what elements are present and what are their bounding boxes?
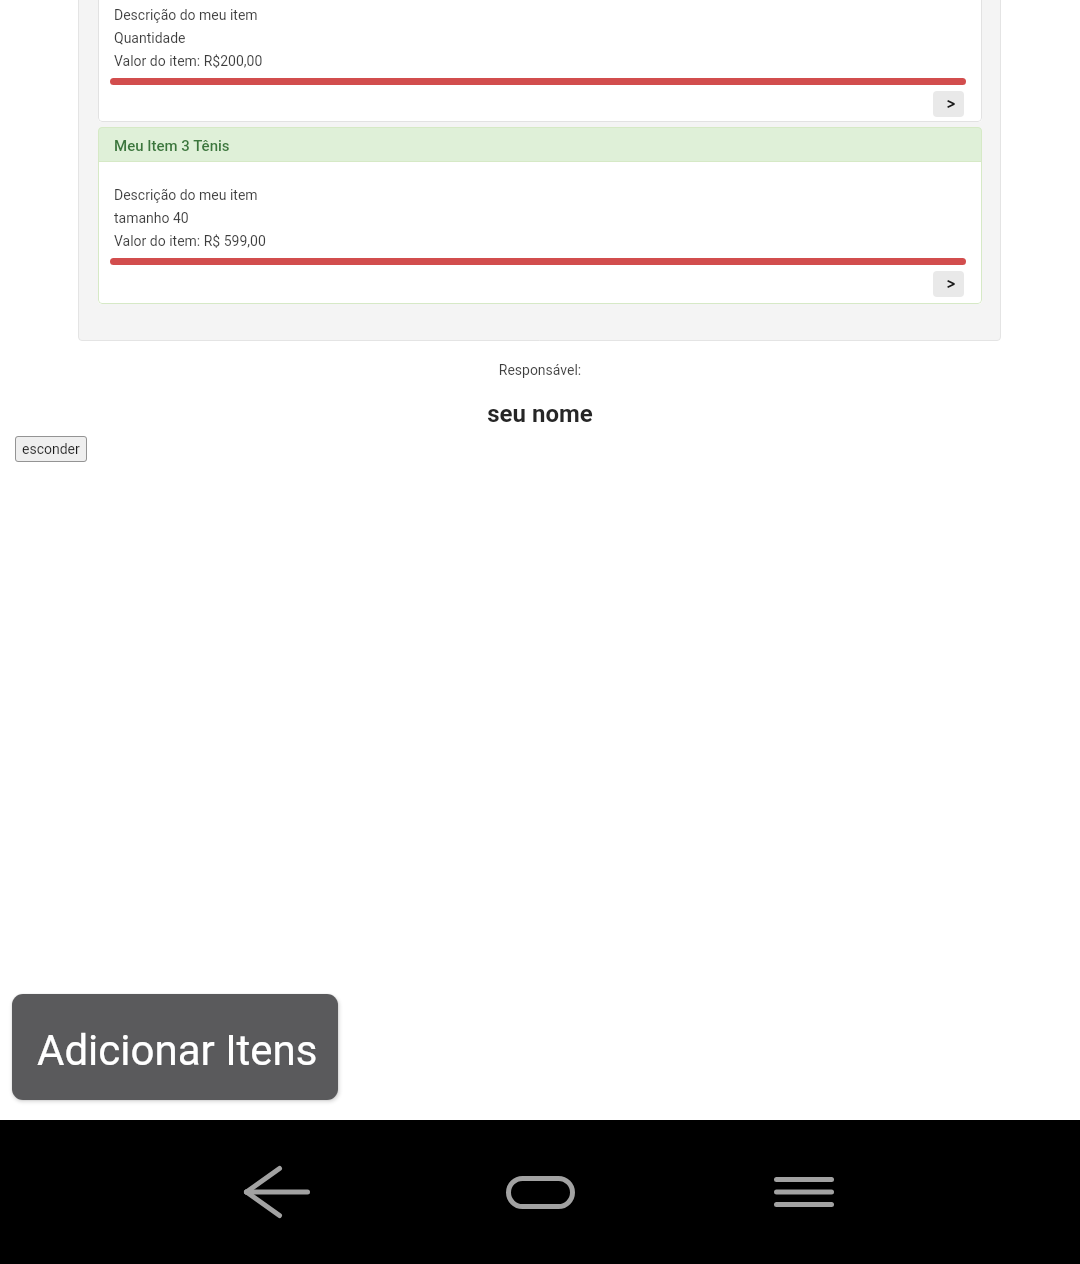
button[interactable]: Adicionar Itens (12, 994, 338, 1100)
button[interactable]: Abrir item (933, 271, 964, 297)
button[interactable]: Home (480, 1132, 600, 1252)
button[interactable]: Recent apps (744, 1132, 864, 1252)
staticText: Adicionar Itens (37, 1026, 318, 1075)
staticText: seu nome (0, 400, 1080, 428)
staticText: Meu Item 3 Tênis (114, 137, 230, 155)
staticText: Descrição do meu item tamanho 40 Valor d… (114, 187, 266, 250)
button[interactable]: Back (217, 1132, 337, 1252)
button[interactable]: esconder (15, 436, 87, 462)
staticText: Descrição do meu item Quantidade Valor d… (114, 7, 263, 70)
staticText: Responsável: (0, 362, 1080, 378)
button[interactable]: Abrir item (933, 91, 964, 117)
button[interactable]: Meu Item 3 Tênis (98, 127, 982, 304)
button[interactable]: Descrição do meu item Quantidade Valor d… (98, 0, 982, 122)
staticText: esconder (22, 441, 80, 457)
